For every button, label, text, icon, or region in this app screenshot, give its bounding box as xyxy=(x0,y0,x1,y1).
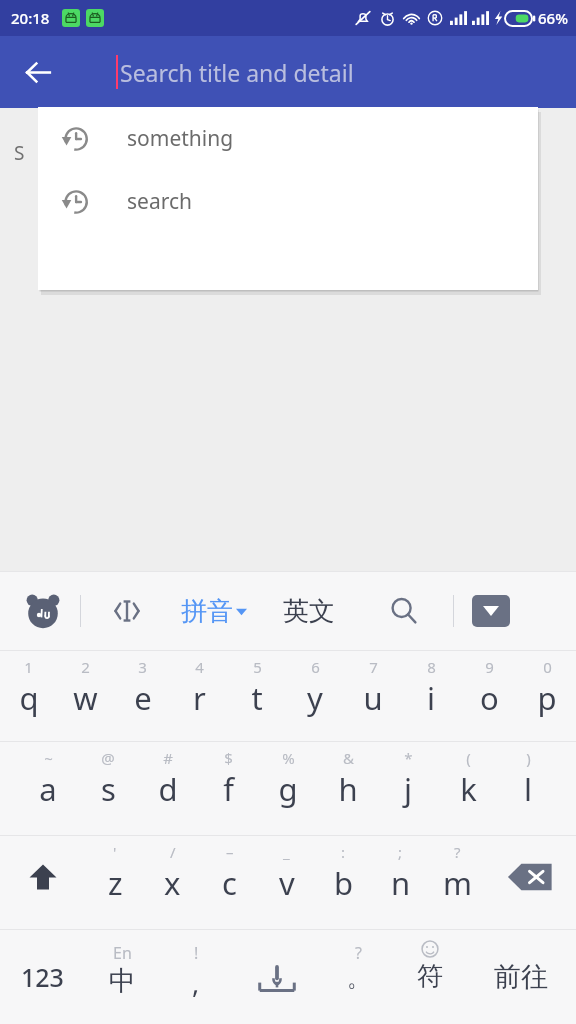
staticText: 20:18 xyxy=(11,8,50,28)
button[interactable]: : xyxy=(315,836,372,929)
button[interactable]: * xyxy=(378,742,438,835)
staticText: – xyxy=(226,842,234,862)
button[interactable]: @ xyxy=(78,742,138,835)
staticText: u xyxy=(363,677,383,719)
staticText: e xyxy=(134,677,152,719)
button[interactable]: Hide keyboard xyxy=(472,595,510,627)
button[interactable]: 3 xyxy=(114,651,171,741)
button[interactable]: # xyxy=(138,742,198,835)
staticText: q xyxy=(19,677,39,719)
staticText: , xyxy=(192,964,200,1001)
staticText: 符 xyxy=(417,960,443,993)
staticText: S xyxy=(14,140,25,166)
staticText: f xyxy=(223,768,234,810)
button[interactable]: Baidu input xyxy=(20,588,66,634)
staticText: 8 xyxy=(427,657,436,677)
button[interactable]: Move cursor xyxy=(103,587,151,635)
button[interactable]: ? xyxy=(322,930,394,1024)
button[interactable]: 0 xyxy=(518,651,576,741)
button[interactable]: 5 xyxy=(228,651,286,741)
staticText: ; xyxy=(398,842,403,862)
staticText: 中 xyxy=(109,964,136,998)
button[interactable]: Space, voice input xyxy=(232,930,322,1024)
staticText: n xyxy=(391,862,411,904)
staticText: a xyxy=(39,768,57,810)
button[interactable]: En xyxy=(84,930,160,1024)
staticText: # xyxy=(163,748,173,768)
staticText: @ xyxy=(101,748,115,768)
staticText: p xyxy=(537,677,557,719)
staticText: 7 xyxy=(369,657,378,677)
button[interactable]: 前往 xyxy=(466,930,576,1024)
staticText: r xyxy=(193,677,206,719)
button[interactable]: 4 xyxy=(171,651,228,741)
staticText: v xyxy=(279,862,295,904)
staticText: ! xyxy=(194,942,199,964)
button[interactable]: 2 xyxy=(57,651,114,741)
button[interactable]: 6 xyxy=(286,651,344,741)
button[interactable]: Backspace xyxy=(486,836,576,929)
staticText: w xyxy=(73,677,98,719)
button[interactable]: ( xyxy=(438,742,498,835)
staticText: 3 xyxy=(138,657,147,677)
staticText: & xyxy=(343,748,354,768)
staticText: h xyxy=(338,768,358,810)
staticText: ) xyxy=(526,748,531,768)
staticText: g xyxy=(278,768,298,810)
staticText: y xyxy=(307,677,323,719)
button[interactable]: ? xyxy=(429,836,486,929)
button[interactable]: 拼音 xyxy=(177,589,251,634)
button[interactable]: 9 xyxy=(460,651,518,741)
staticText: 4 xyxy=(195,657,204,677)
button[interactable]: 符 xyxy=(394,930,466,1024)
staticText: search xyxy=(127,187,192,216)
button[interactable]: / xyxy=(144,836,201,929)
button[interactable]: – xyxy=(201,836,258,929)
staticText: d xyxy=(158,768,178,810)
staticText: c xyxy=(222,862,237,904)
staticText: ? xyxy=(454,842,461,862)
staticText: % xyxy=(282,748,295,768)
button[interactable]: ! xyxy=(160,930,232,1024)
button[interactable]: $ xyxy=(198,742,258,835)
staticText: 5 xyxy=(253,657,262,677)
staticText: something xyxy=(127,124,234,153)
staticText: * xyxy=(404,748,413,768)
button[interactable]: search xyxy=(38,170,538,233)
button[interactable]: ; xyxy=(372,836,429,929)
button[interactable]: & xyxy=(318,742,378,835)
button[interactable]: % xyxy=(258,742,318,835)
staticText: ' xyxy=(113,842,117,862)
staticText: 英文 xyxy=(283,595,335,628)
button[interactable]: ~ xyxy=(18,742,78,835)
staticText: 66% xyxy=(538,8,568,28)
staticText: Search title and detail xyxy=(120,57,354,88)
staticText: ( xyxy=(466,748,471,768)
button[interactable]: 英文 xyxy=(279,589,339,634)
button[interactable]: ' xyxy=(86,836,144,929)
button[interactable]: 8 xyxy=(402,651,460,741)
button[interactable]: ) xyxy=(498,742,558,835)
staticText: ~ xyxy=(44,748,53,768)
staticText: 9 xyxy=(485,657,494,677)
button[interactable]: 7 xyxy=(344,651,402,741)
staticText: En xyxy=(113,942,132,964)
button[interactable]: something xyxy=(38,107,538,170)
staticText: t xyxy=(251,677,263,719)
staticText: 1 xyxy=(24,657,33,677)
staticText: _ xyxy=(283,842,290,862)
staticText: 2 xyxy=(81,657,90,677)
staticText: z xyxy=(108,862,123,904)
button[interactable]: _ xyxy=(258,836,315,929)
button[interactable]: Back xyxy=(10,44,66,100)
staticText: l xyxy=(524,768,532,810)
staticText: 拼音 xyxy=(181,595,233,628)
staticText: / xyxy=(170,842,176,862)
button[interactable]: Shift xyxy=(0,836,86,929)
staticText: m xyxy=(443,862,472,904)
staticText: 123 xyxy=(21,960,64,994)
button[interactable]: 123 xyxy=(0,930,84,1024)
button[interactable]: 1 xyxy=(0,651,57,741)
button[interactable]: Search xyxy=(379,586,429,636)
staticText: 6 xyxy=(311,657,320,677)
